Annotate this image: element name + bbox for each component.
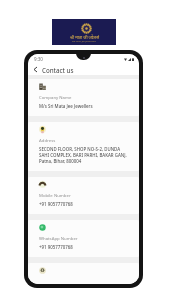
staticText: Contact us <box>42 66 74 74</box>
staticText: Company Name <box>39 94 72 100</box>
staticText: श्री माता जी ज्वेलर्स <box>70 35 99 41</box>
staticText: SRI MATA JEE JEWELLERS <box>72 40 96 43</box>
staticText: 9:30 <box>34 56 43 62</box>
button[interactable]: Address <box>28 122 139 171</box>
staticText: M/s Sri Mata Jee Jewellers <box>39 103 93 109</box>
staticText: WhatsApp Number <box>39 235 78 241</box>
button[interactable]: Mobile Number <box>28 177 139 214</box>
staticText: Mobile Number <box>39 192 71 198</box>
staticText: +91 9057770768 <box>39 201 73 207</box>
button[interactable]: Email <box>28 263 139 284</box>
staticText: SECOND FLOOR, SHOP NO-S-2, DUNDA <box>39 146 121 152</box>
button[interactable]: Back <box>31 65 40 74</box>
staticText: +91 9057770768 <box>39 244 73 250</box>
staticText: SAHI COMPLEX, BARI PARHI, BAKAR GANJ, <box>39 152 127 158</box>
staticText: Address <box>39 137 56 143</box>
staticText: Patna, Bihar, 800004 <box>39 158 82 164</box>
button[interactable]: Company Name <box>28 79 139 116</box>
button[interactable]: WhatsApp Number <box>28 220 139 257</box>
